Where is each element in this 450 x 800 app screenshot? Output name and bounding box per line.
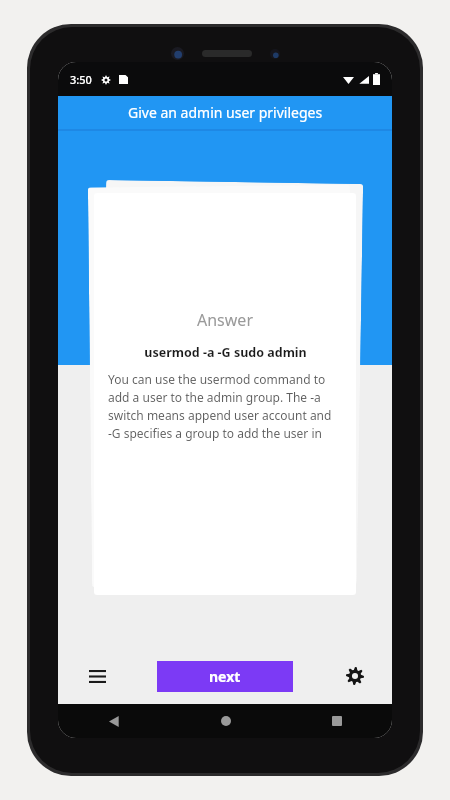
button[interactable]: Menu (80, 659, 114, 693)
button[interactable]: Settings (338, 659, 372, 693)
staticText: Give an admin user privileges (128, 103, 323, 122)
staticText: usermod -a -G sudo admin (144, 344, 307, 361)
staticText: You can use the usermod command to add a… (108, 371, 342, 442)
button[interactable]: next (157, 661, 293, 692)
button[interactable]: Recents (323, 707, 351, 735)
staticText: Answer (197, 309, 253, 331)
staticText: 3:50 (70, 72, 92, 87)
staticText: next (209, 667, 241, 686)
button[interactable]: Answer (94, 193, 356, 595)
button[interactable]: Home (212, 707, 240, 735)
button[interactable]: Back (100, 707, 128, 735)
